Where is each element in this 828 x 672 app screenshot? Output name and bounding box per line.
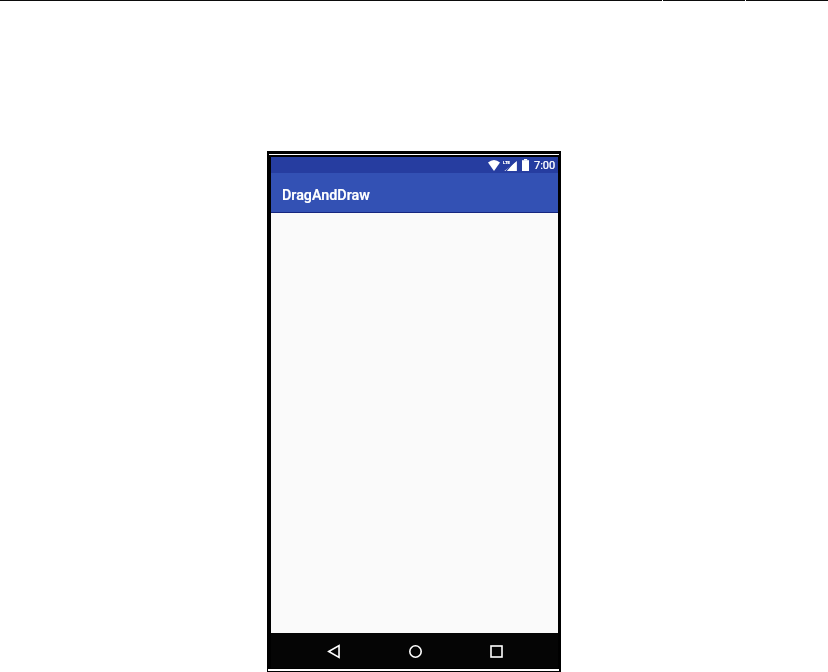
button[interactable]: Recent apps [481, 636, 511, 666]
button[interactable]: Home [400, 636, 430, 666]
staticText: LTE [503, 160, 511, 165]
staticText: DragAndDraw [282, 187, 370, 204]
staticText: 7:00 [534, 159, 556, 172]
button[interactable]: Back [319, 636, 349, 666]
